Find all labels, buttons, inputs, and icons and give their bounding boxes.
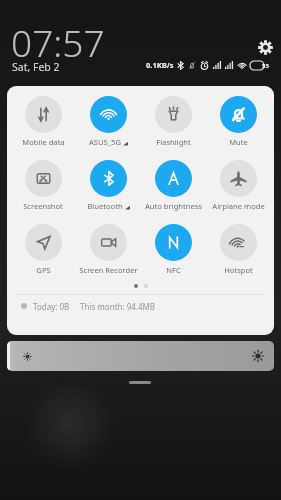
button[interactable]: Screen Recorder (77, 223, 139, 276)
staticText: Bluetooth (87, 201, 123, 211)
staticText: GPS (36, 265, 51, 275)
staticText: 0.1KB/s (146, 60, 174, 70)
button[interactable]: Settings (255, 37, 275, 57)
staticText: Mute (229, 137, 248, 147)
staticText: ASUS_5G (89, 137, 121, 147)
staticText: This month: 94.4MB (80, 301, 156, 312)
button[interactable]: Flashlight (142, 95, 204, 148)
button[interactable]: NFC (142, 223, 204, 276)
button[interactable]: Bluetooth (77, 159, 139, 212)
staticText: Flashlight (156, 137, 191, 147)
staticText: Hotspot (224, 265, 253, 275)
staticText: Airplane mode (212, 201, 265, 211)
staticText: Today: 0B (33, 301, 70, 312)
button[interactable]: Airplane mode (207, 159, 269, 212)
button[interactable]: GPS (12, 223, 74, 276)
staticText: Sat, Feb 2 (12, 60, 60, 74)
button[interactable]: Hotspot (207, 223, 269, 276)
staticText: NFC (166, 265, 181, 275)
staticText: Screen Recorder (79, 265, 138, 275)
button[interactable]: Brightness (7, 341, 274, 371)
staticText: Screenshot (23, 201, 63, 211)
button[interactable]: Screenshot (12, 159, 74, 212)
staticText: Auto brightness (145, 201, 202, 211)
button[interactable]: Mobile data (12, 95, 74, 148)
staticText: 07:57 (11, 17, 105, 67)
staticText: Mobile data (22, 137, 65, 147)
button[interactable]: Mute (207, 95, 269, 148)
button[interactable]: ASUS_5G (77, 95, 139, 148)
button[interactable]: Today: 0B (7, 295, 274, 317)
button[interactable]: Auto brightness (142, 159, 204, 212)
staticText: 55 (262, 62, 269, 70)
